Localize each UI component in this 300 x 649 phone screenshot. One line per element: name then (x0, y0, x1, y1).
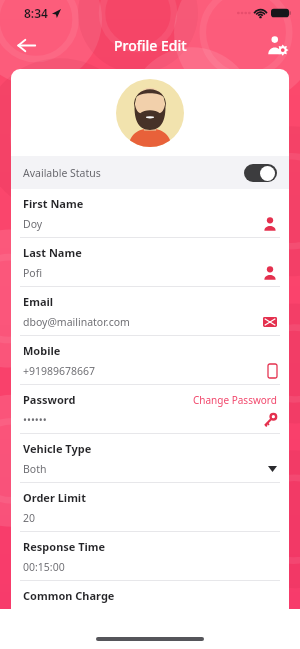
staticText: Change Password (193, 393, 277, 407)
staticText: First Name (23, 196, 84, 211)
other: Person (263, 266, 277, 280)
button[interactable]: Available status toggle (244, 164, 277, 182)
other: Select vehicle type (268, 466, 277, 472)
button[interactable]: Mobile (11, 336, 289, 385)
staticText: Response Time (23, 539, 106, 554)
staticText: 00:15:00 (23, 560, 65, 574)
staticText: •••••• (23, 413, 47, 427)
staticText: Last Name (23, 245, 82, 260)
staticText: Mobile (23, 343, 61, 358)
staticText: dboy@mailinator.com (23, 315, 130, 329)
staticText: Both (23, 462, 47, 476)
staticText: Vehicle Type (23, 441, 92, 456)
other: Mobile (268, 364, 277, 378)
button[interactable]: Password (11, 385, 289, 434)
button[interactable]: Account settings (261, 29, 293, 61)
button[interactable]: Response Time (11, 532, 289, 581)
button[interactable]: Common Charge (11, 581, 289, 603)
staticText: Profile Edit (114, 36, 187, 55)
staticText: 8:34 (24, 5, 48, 21)
button[interactable]: Available Status (11, 156, 289, 189)
staticText: Pofi (23, 266, 43, 280)
staticText: Email (23, 294, 54, 309)
button[interactable]: Back (9, 28, 43, 62)
button[interactable]: Order Limit (11, 483, 289, 532)
staticText: Doy (23, 217, 43, 231)
staticText: Order Limit (23, 490, 86, 505)
staticText: Available Status (23, 166, 101, 180)
button[interactable]: Email (11, 287, 289, 336)
staticText: Common Charge (23, 588, 115, 603)
staticText: Password (23, 392, 76, 407)
button[interactable]: Vehicle Type (11, 434, 289, 483)
button[interactable]: Last Name (11, 238, 289, 287)
other: Password (263, 413, 277, 427)
staticText: +91989678667 (23, 364, 96, 378)
button[interactable]: First Name (11, 189, 289, 238)
other: Email (263, 317, 277, 327)
staticText: 20 (23, 511, 36, 525)
other: Person (263, 217, 277, 231)
